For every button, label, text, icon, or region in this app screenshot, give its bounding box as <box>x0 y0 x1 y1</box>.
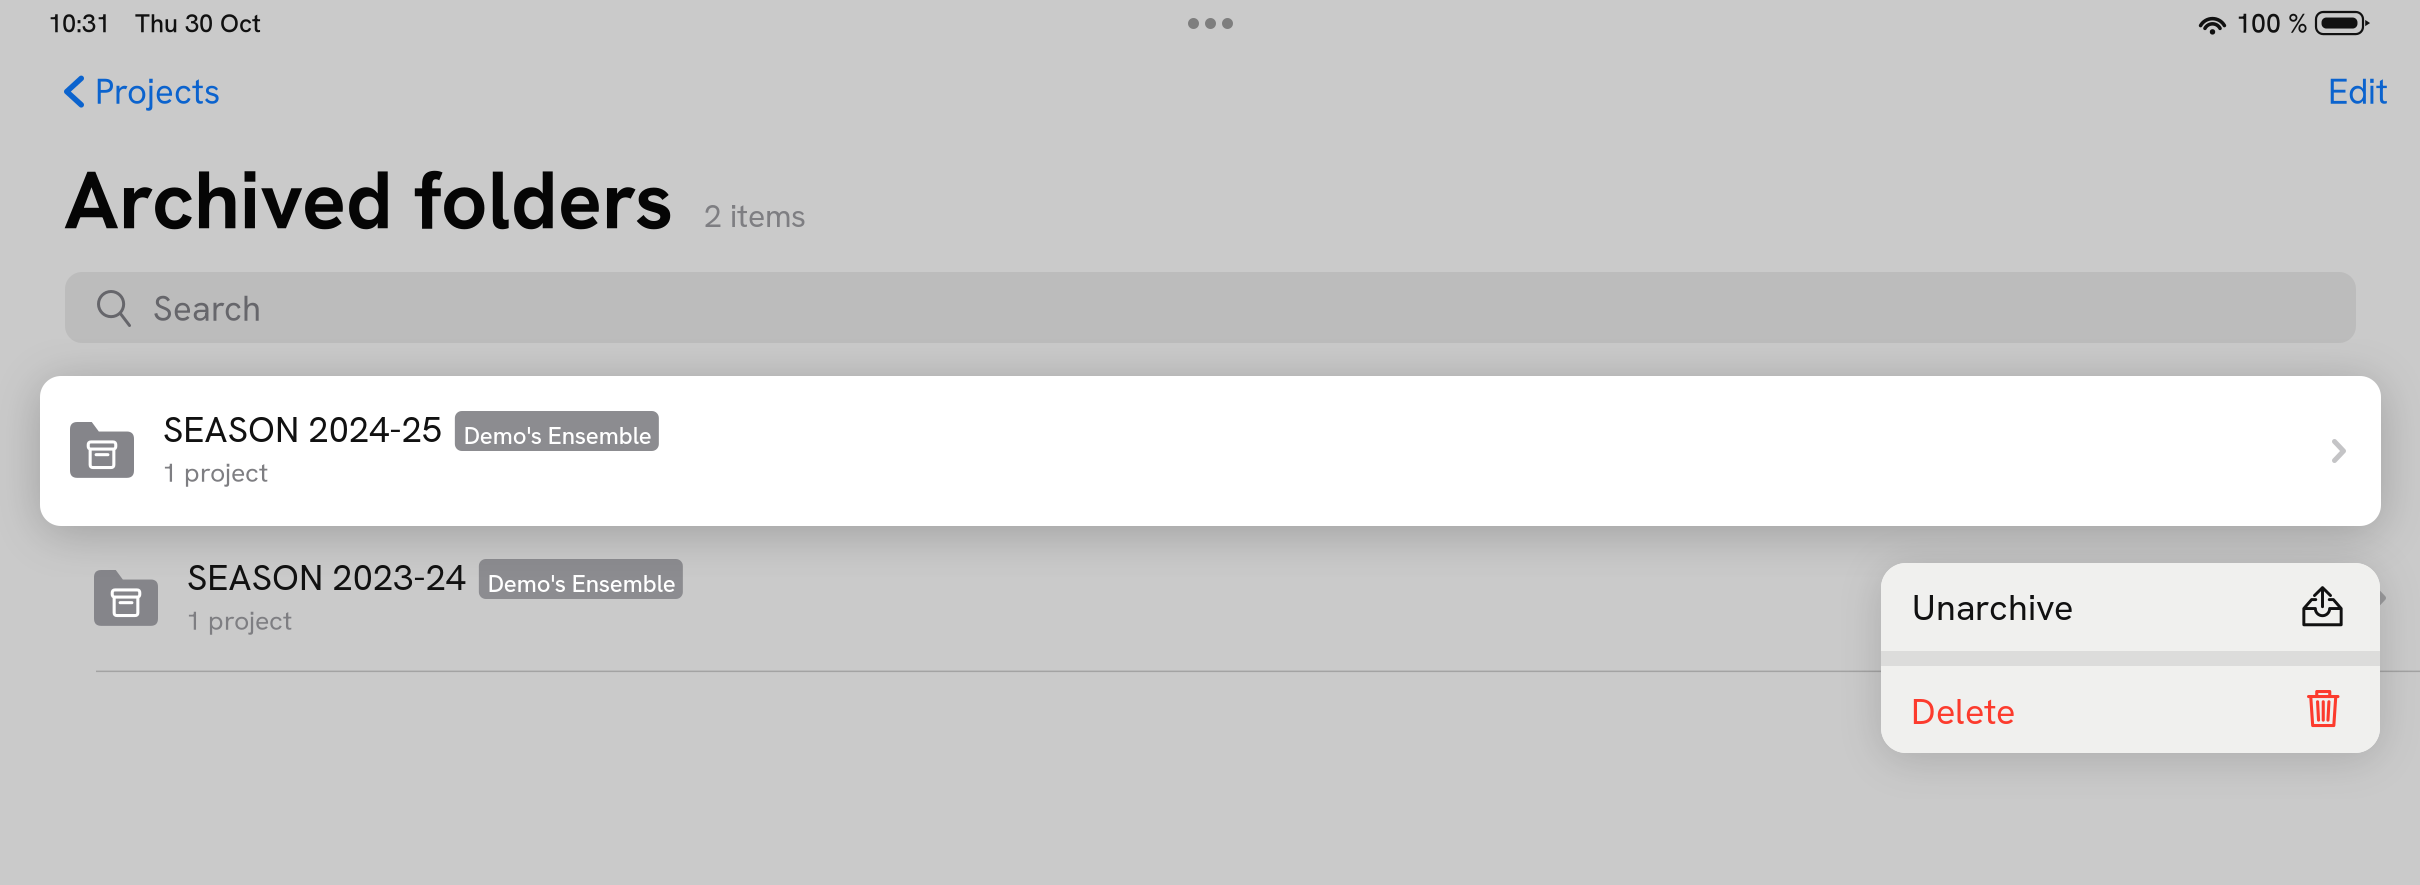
staticText: Unarchive <box>1912 584 2073 631</box>
staticText: 10:31 <box>48 7 110 40</box>
staticText: Delete <box>1911 688 2015 735</box>
staticText: Edit <box>2328 69 2388 114</box>
staticText: 1 project <box>186 603 292 638</box>
staticText: Projects <box>95 69 220 114</box>
button[interactable]: Edit <box>2322 61 2394 122</box>
button[interactable]: Projects <box>64 61 220 122</box>
button[interactable]: Unarchive <box>1881 563 2380 651</box>
staticText: 2 items <box>704 195 806 237</box>
staticText: Demo's Ensemble <box>488 568 676 599</box>
staticText: Archived folders <box>64 147 673 253</box>
staticText: 100 % <box>2236 6 2308 41</box>
staticText: 1 project <box>162 455 268 490</box>
staticText: Search <box>153 286 261 331</box>
staticText: Thu 30 Oct <box>135 7 261 40</box>
staticText: Demo's Ensemble <box>464 420 652 451</box>
staticText: SEASON 2023-24 <box>187 554 466 601</box>
button[interactable]: Delete <box>1881 666 2380 753</box>
staticText: SEASON 2024-25 <box>163 406 442 453</box>
